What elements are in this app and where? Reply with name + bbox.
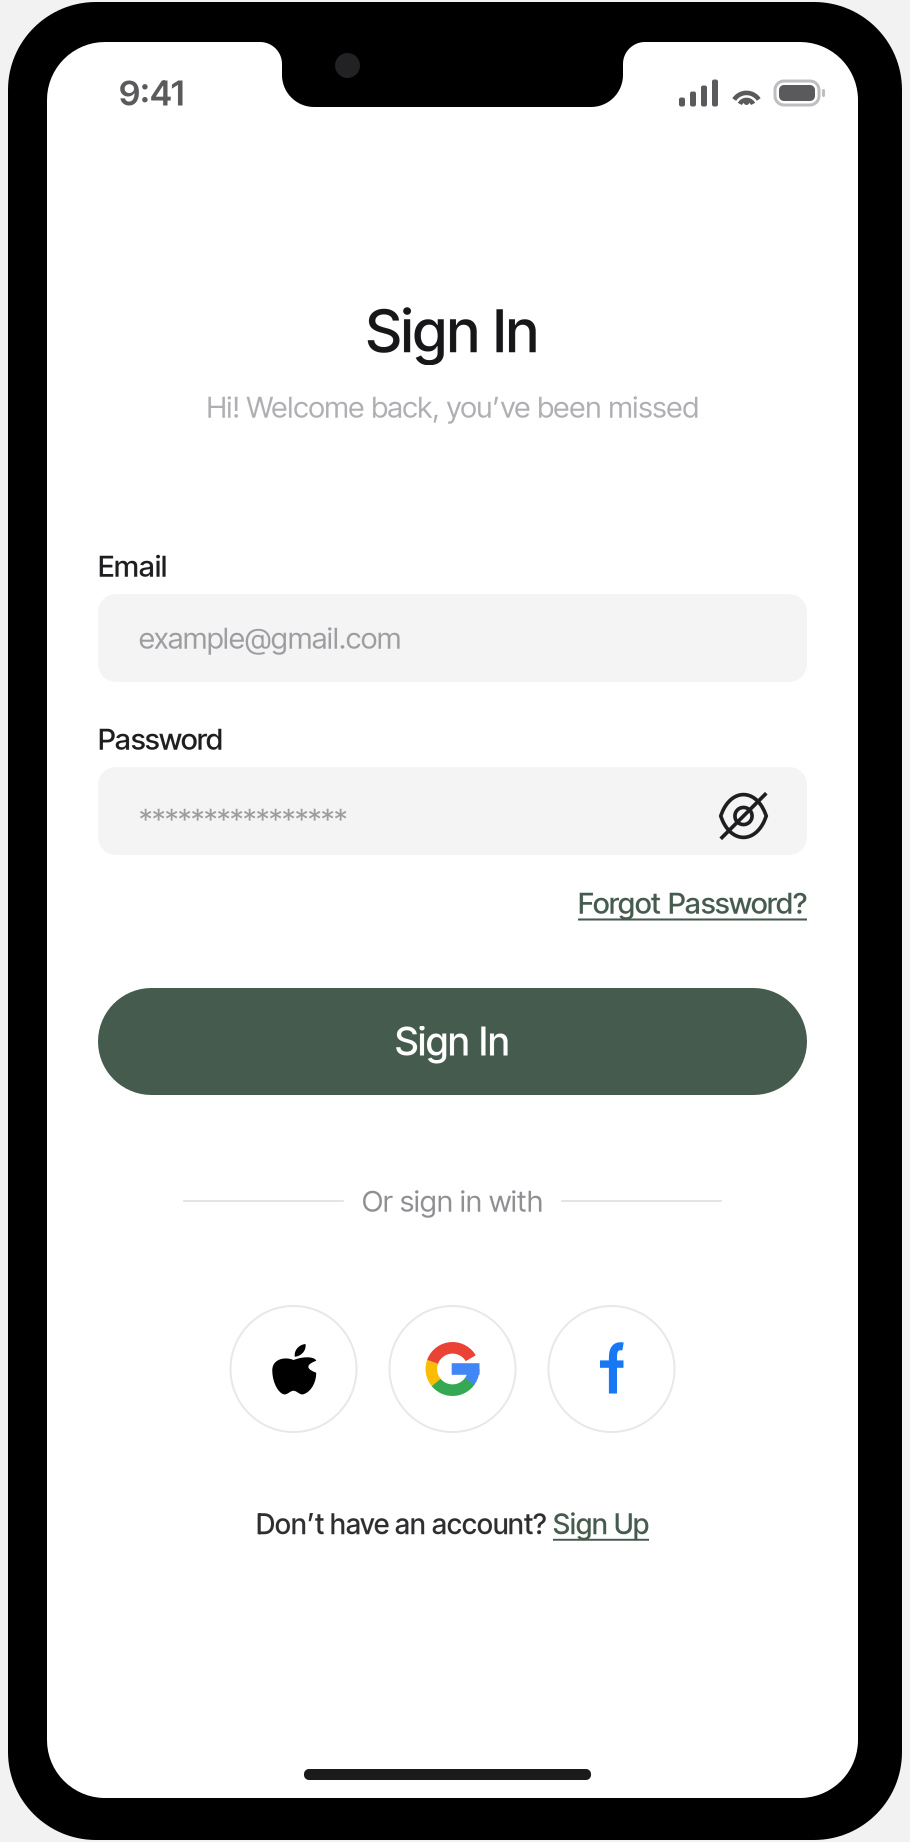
button[interactable]: Forgot Password? — [578, 885, 807, 921]
button[interactable]: Sign in with Facebook — [548, 1306, 674, 1432]
button[interactable]: Show password — [719, 786, 768, 835]
staticText: Sign Up — [553, 1507, 649, 1541]
staticText: **************** — [139, 801, 347, 837]
button[interactable]: Sign in with Google — [389, 1306, 515, 1432]
button[interactable]: Don’t have an account? — [256, 1507, 649, 1541]
staticText: Password — [98, 721, 223, 757]
staticText: Sign In — [366, 295, 539, 366]
staticText: example@gmail.com — [139, 620, 401, 656]
staticText: Forgot Password? — [578, 885, 807, 921]
staticText: Sign In — [395, 1018, 510, 1065]
staticText: Email — [98, 548, 167, 584]
button[interactable]: Sign In — [98, 988, 807, 1095]
button[interactable]: Sign in with Apple — [230, 1306, 356, 1432]
staticText: Or sign in with — [362, 1183, 543, 1219]
staticText: Hi! Welcome back, you’ve been missed — [206, 389, 698, 425]
staticText: Don’t have an account? — [256, 1507, 553, 1541]
staticText: 9:41 — [119, 72, 184, 114]
